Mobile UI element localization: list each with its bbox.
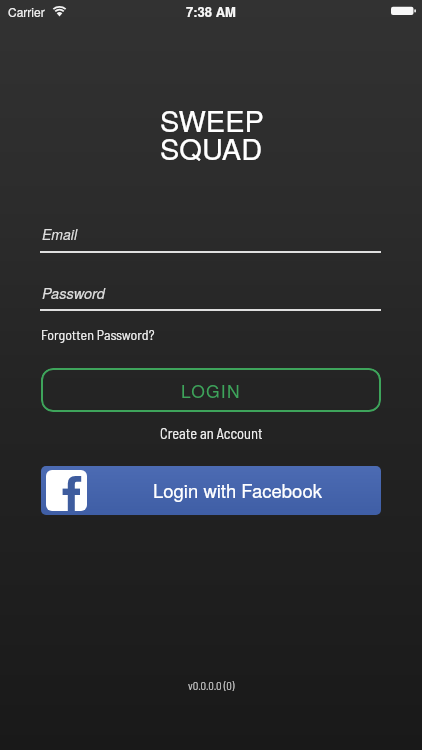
staticText: SWEEP bbox=[160, 99, 264, 141]
staticText: SQUAD bbox=[160, 127, 263, 169]
button[interactable]: Create an Account bbox=[160, 424, 263, 441]
button[interactable] bbox=[40, 220, 381, 253]
staticText: Password bbox=[42, 283, 105, 303]
button[interactable] bbox=[40, 278, 381, 311]
button[interactable]: LOGIN bbox=[41, 368, 381, 412]
staticText: Email bbox=[42, 224, 77, 244]
staticText: Create an Account bbox=[160, 424, 263, 441]
staticText: Login with Facebook bbox=[153, 477, 322, 503]
staticText: v0.0.0.0 (0) bbox=[188, 679, 235, 692]
staticText: Forgotten Password? bbox=[41, 326, 155, 343]
button[interactable]: Login with Facebook bbox=[41, 466, 381, 515]
staticText: Carrier bbox=[8, 3, 45, 20]
button[interactable]: Forgotten Password? bbox=[41, 326, 155, 343]
staticText: LOGIN bbox=[181, 378, 241, 403]
staticText: 7:38 AM bbox=[186, 2, 236, 21]
